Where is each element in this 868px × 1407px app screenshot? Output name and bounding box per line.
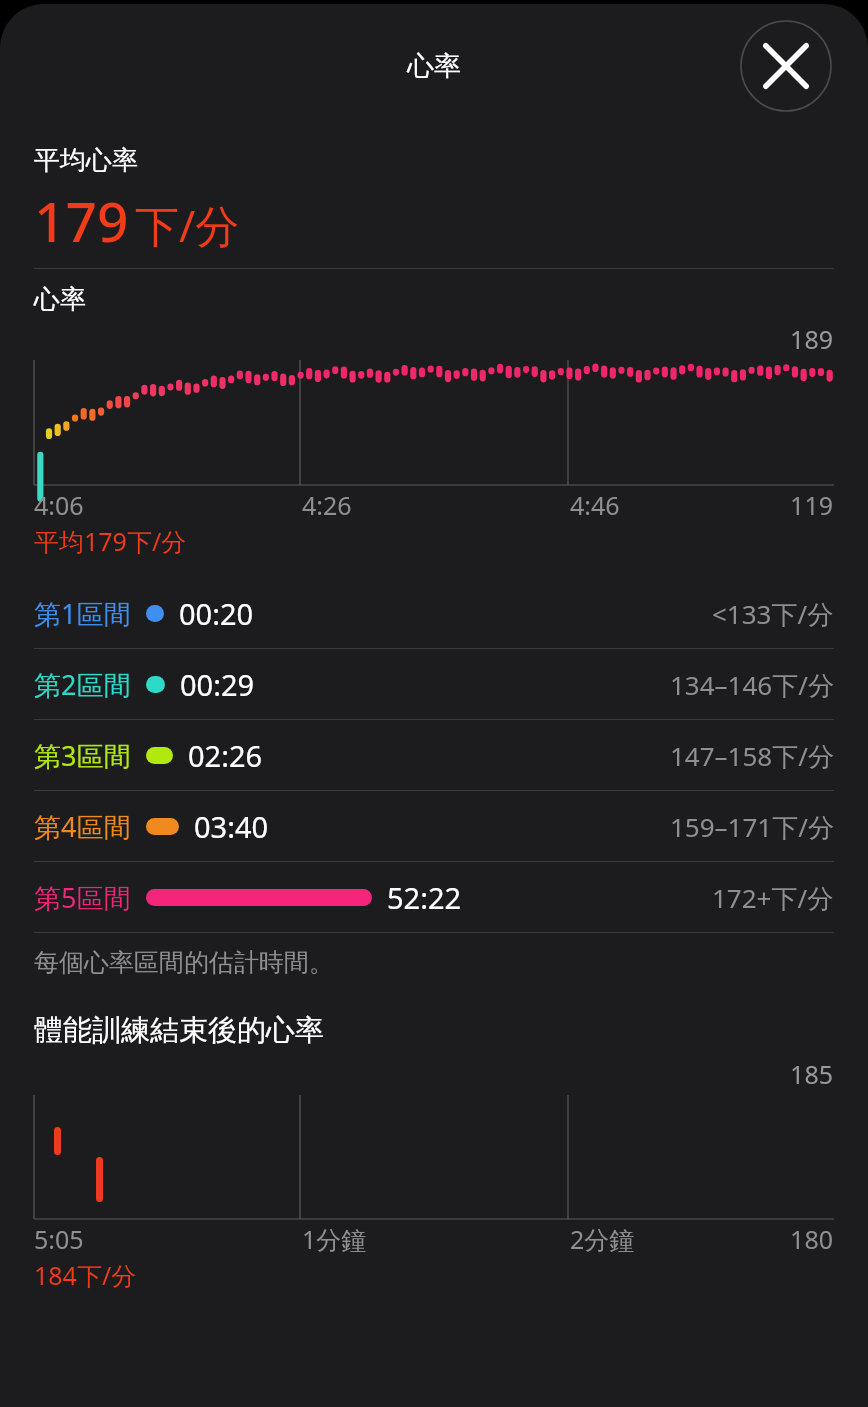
staticText: 52:22 — [387, 878, 462, 917]
staticText: 1分鐘 — [302, 1222, 367, 1252]
staticText: 185 — [0, 1057, 833, 1091]
staticText: 00:20 — [179, 594, 254, 633]
staticText: 第1區間 — [34, 595, 131, 632]
staticText: 2分鐘 — [570, 1222, 635, 1252]
staticText: 下/分 — [135, 195, 240, 255]
staticText: 159–171下/分 — [670, 809, 834, 845]
staticText: 心率 — [34, 283, 86, 316]
staticText: 4:06 — [34, 488, 84, 518]
staticText: 第3區間 — [34, 737, 131, 774]
button[interactable]: 第4區間 — [0, 791, 868, 862]
staticText: 4:26 — [302, 488, 352, 518]
button[interactable]: 第1區間 — [0, 578, 868, 649]
staticText: 每個心率區間的估計時間。 — [34, 947, 334, 978]
staticText: 119 — [0, 488, 833, 518]
staticText: 172+下/分 — [712, 880, 834, 916]
staticText: 02:26 — [188, 736, 263, 775]
staticText: 180 — [0, 1222, 833, 1252]
staticText: 5:05 — [34, 1222, 84, 1252]
staticText: 189 — [0, 322, 833, 356]
button[interactable]: 第5區間 — [0, 862, 868, 933]
button[interactable]: 第2區間 — [0, 649, 868, 720]
staticText: 184下/分 — [34, 1258, 137, 1292]
staticText: 平均179下/分 — [34, 524, 187, 558]
staticText: <133下/分 — [712, 596, 834, 632]
staticText: 4:46 — [570, 488, 620, 518]
staticText: 03:40 — [194, 807, 269, 846]
button[interactable]: Close — [739, 19, 833, 113]
staticText: 平均心率 — [34, 144, 138, 177]
button[interactable]: 第3區間 — [0, 720, 868, 791]
staticText: 147–158下/分 — [670, 738, 834, 774]
staticText: 00:29 — [180, 665, 255, 704]
staticText: 第5區間 — [34, 879, 131, 916]
staticText: 第2區間 — [34, 666, 131, 703]
staticText: 體能訓練結束後的心率 — [34, 1012, 324, 1049]
staticText: 第4區間 — [34, 808, 131, 845]
staticText: 134–146下/分 — [670, 667, 834, 703]
staticText: 179 — [34, 183, 129, 258]
staticText: 心率 — [407, 49, 461, 83]
